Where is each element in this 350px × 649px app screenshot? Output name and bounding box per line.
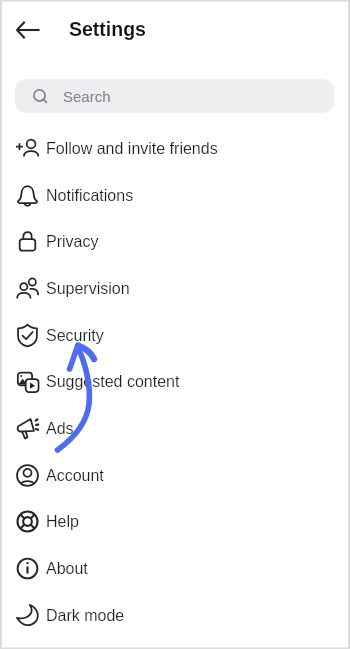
staticText: Privacy <box>46 233 99 251</box>
staticText: Settings <box>69 18 146 40</box>
staticText: Suggested content <box>46 373 180 391</box>
button[interactable]: Notifications <box>0 172 350 219</box>
button[interactable]: Follow and invite friends <box>0 125 350 172</box>
staticText: Notifications <box>46 187 134 205</box>
staticText: Supervision <box>46 280 130 298</box>
button[interactable]: Supervision <box>0 265 350 312</box>
button[interactable]: Privacy <box>0 218 350 265</box>
button[interactable]: About <box>0 545 350 592</box>
button[interactable]: Back <box>6 8 50 52</box>
button[interactable]: Ads <box>0 405 350 452</box>
button[interactable]: Help <box>0 498 350 545</box>
staticText: Ads <box>46 420 74 438</box>
button[interactable]: Account <box>0 452 350 499</box>
staticText: Follow and invite friends <box>46 140 218 158</box>
staticText: Dark mode <box>46 607 125 625</box>
button[interactable]: Security <box>0 312 350 359</box>
button[interactable]: Dark mode <box>0 592 350 639</box>
staticText: Help <box>46 513 79 531</box>
staticText: Security <box>46 327 104 345</box>
button[interactable]: Search <box>15 79 334 113</box>
staticText: Search <box>63 88 111 105</box>
button[interactable]: Suggested content <box>0 358 350 405</box>
staticText: About <box>46 560 88 578</box>
staticText: Account <box>46 467 104 485</box>
